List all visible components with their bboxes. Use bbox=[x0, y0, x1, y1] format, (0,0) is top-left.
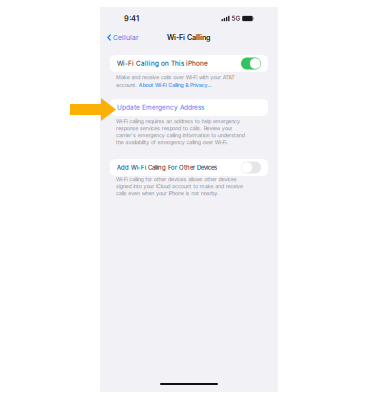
staticText: Cellular bbox=[113, 33, 139, 42]
button[interactable]: Cellular bbox=[100, 31, 146, 44]
button[interactable]: Wi-Fi Calling on This iPhone bbox=[110, 55, 268, 72]
staticText: 5G bbox=[231, 15, 240, 22]
button[interactable]: Update Emergency Address bbox=[110, 99, 268, 116]
staticText: Update Emergency Address bbox=[117, 104, 204, 111]
staticText: Wi-Fi Calling bbox=[167, 33, 211, 42]
staticText: account. bbox=[116, 82, 137, 88]
staticText: Wi-Fi calling for other devices allows o… bbox=[116, 176, 243, 197]
staticText: Wi-Fi calling requires an address to hel… bbox=[116, 118, 245, 146]
staticText: Make and receive calls over Wi-Fi with y… bbox=[116, 74, 234, 80]
staticText: Add Wi-Fi Calling For Other Devices bbox=[117, 164, 217, 171]
button[interactable]: Add Wi-Fi Calling For Other Devices bbox=[110, 159, 268, 176]
staticText: 9:41 bbox=[124, 14, 139, 23]
button[interactable]: About Wi-Fi Calling & Privacy… bbox=[139, 82, 212, 88]
staticText: Wi-Fi Calling on This iPhone bbox=[117, 60, 208, 67]
staticText: About Wi-Fi Calling & Privacy… bbox=[139, 82, 212, 88]
